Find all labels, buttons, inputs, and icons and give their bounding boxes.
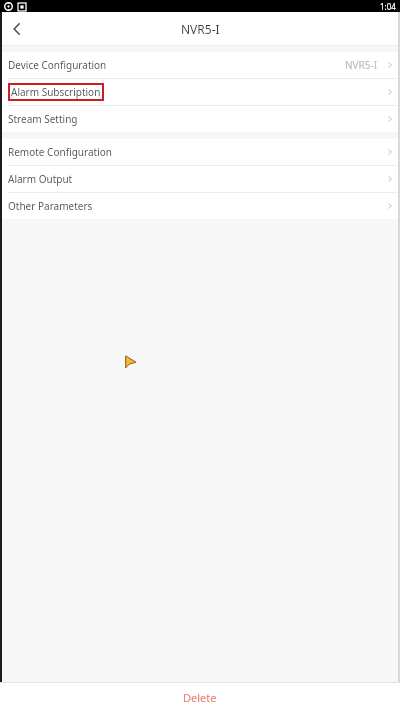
button[interactable]: Back bbox=[0, 12, 34, 46]
staticText: Other Parameters bbox=[8, 199, 93, 213]
staticText: NVR5-I bbox=[345, 58, 378, 72]
button[interactable]: Remote Configuration bbox=[0, 139, 400, 165]
button[interactable]: Device Configuration bbox=[0, 52, 400, 78]
staticText: 1:04 bbox=[380, 1, 396, 12]
button[interactable]: Alarm Output bbox=[0, 166, 400, 192]
button[interactable]: Delete bbox=[0, 683, 400, 711]
staticText: Device Configuration bbox=[8, 58, 107, 72]
button[interactable]: Stream Setting bbox=[0, 106, 400, 132]
staticText: Stream Setting bbox=[8, 112, 78, 126]
staticText: Delete bbox=[183, 690, 217, 705]
staticText: Alarm Subscription bbox=[11, 85, 101, 99]
button[interactable]: Alarm Subscription bbox=[0, 79, 400, 105]
staticText: Alarm Output bbox=[8, 172, 73, 186]
staticText: NVR5-I bbox=[181, 21, 220, 37]
staticText: Remote Configuration bbox=[8, 145, 112, 159]
button[interactable]: Other Parameters bbox=[0, 193, 400, 219]
